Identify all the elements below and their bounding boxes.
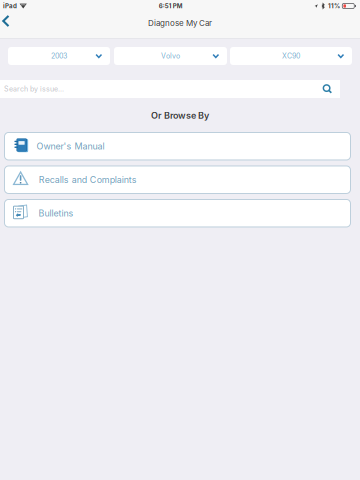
button[interactable]: XC90 xyxy=(230,47,352,65)
staticText: XC90 xyxy=(282,52,300,60)
button[interactable]: Search by issue... xyxy=(0,80,340,98)
button[interactable]: Recalls and Complaints xyxy=(4,166,350,193)
staticText: Recalls and Complaints xyxy=(39,174,137,185)
staticText: 2003 xyxy=(51,52,67,60)
staticText: Search by issue... xyxy=(4,85,64,93)
button[interactable]: Owner's Manual xyxy=(4,132,350,160)
staticText: iPad xyxy=(3,2,17,10)
staticText: Volvo xyxy=(161,52,180,60)
button[interactable]: Volvo xyxy=(114,47,227,65)
staticText: 6:51 PM xyxy=(159,2,183,10)
staticText: Diagnose My Car xyxy=(148,18,212,28)
button[interactable]: 2003 xyxy=(8,47,110,65)
staticText: Owner's Manual xyxy=(36,141,104,152)
button[interactable]: Back xyxy=(0,12,20,38)
staticText: Bulletins xyxy=(38,208,73,219)
staticText: 11% xyxy=(328,2,340,10)
staticText: Or Browse By xyxy=(151,110,209,121)
button[interactable]: Bulletins xyxy=(4,199,350,227)
